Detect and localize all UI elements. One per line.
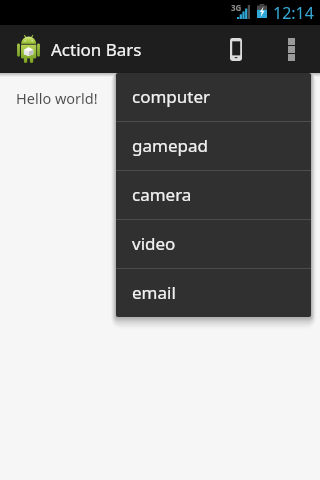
staticText: 12:14 bbox=[273, 2, 314, 24]
button[interactable]: More options bbox=[274, 25, 312, 73]
button[interactable]: computer bbox=[116, 73, 311, 121]
staticText: Hello world! bbox=[16, 88, 98, 108]
staticText: camera bbox=[132, 183, 192, 206]
button[interactable]: video bbox=[116, 220, 311, 268]
staticText: email bbox=[132, 281, 176, 304]
staticText: computer bbox=[132, 85, 211, 108]
button[interactable]: email bbox=[116, 269, 311, 317]
staticText: Action Bars bbox=[51, 38, 142, 61]
button[interactable]: gamepad bbox=[116, 122, 311, 170]
button[interactable]: camera bbox=[116, 171, 311, 219]
button[interactable]: Action Bars bbox=[0, 35, 154, 63]
staticText: 3G bbox=[231, 2, 242, 13]
staticText: video bbox=[132, 232, 176, 255]
button[interactable]: Device bbox=[212, 25, 260, 73]
staticText: gamepad bbox=[132, 134, 208, 157]
